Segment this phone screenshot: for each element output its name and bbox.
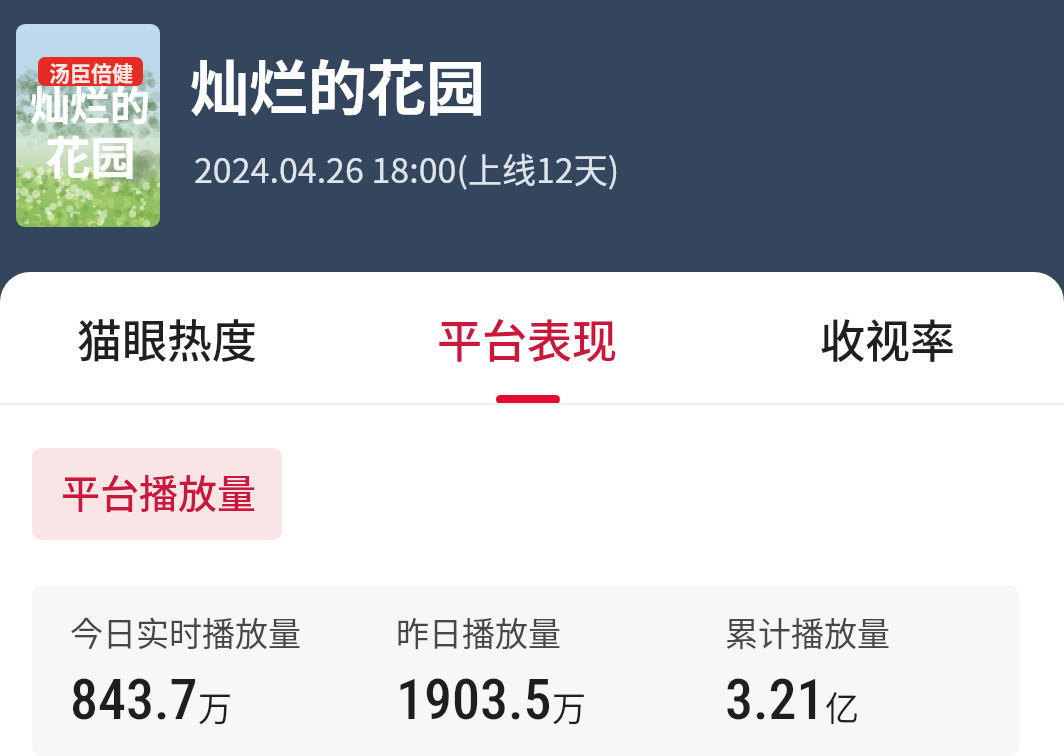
staticText: 3.21: [725, 667, 825, 733]
staticText: 万: [198, 682, 232, 731]
staticText: 猫眼热度: [77, 306, 258, 371]
button[interactable]: 收视率: [796, 272, 980, 417]
staticText: 收视率: [820, 306, 956, 371]
staticText: 今日实时播放量: [70, 608, 301, 656]
button[interactable]: 灿烂的花园 节目海报: [16, 24, 160, 227]
button[interactable]: 猫眼热度: [53, 272, 281, 417]
staticText: 昨日播放量: [396, 608, 561, 656]
staticText: 1903.5: [396, 667, 552, 733]
staticText: 灿烂的: [30, 74, 150, 132]
staticText: 万: [552, 682, 586, 731]
staticText: 亿: [825, 682, 859, 731]
button[interactable]: 平台表现: [413, 272, 641, 417]
button[interactable]: 平台播放量: [32, 448, 282, 540]
staticText: 2024.04.26 18:00(上线12天): [194, 144, 620, 193]
staticText: 汤臣倍健: [49, 57, 133, 86]
staticText: 平台播放量: [61, 463, 257, 519]
button[interactable]: 今日实时播放量: [32, 585, 1019, 756]
staticText: 花园: [45, 123, 136, 188]
staticText: 843.7: [70, 667, 198, 733]
staticText: 灿烂的花园: [190, 42, 486, 127]
staticText: 累计播放量: [725, 608, 890, 656]
staticText: 平台表现: [437, 306, 618, 371]
